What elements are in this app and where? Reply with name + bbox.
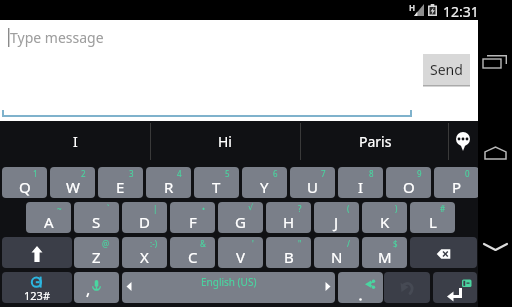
button[interactable]: N <box>314 237 359 268</box>
button[interactable]: E <box>98 167 143 198</box>
staticText: ~ <box>57 203 62 214</box>
staticText: Type message <box>10 28 104 47</box>
button[interactable]: Shift <box>2 237 72 268</box>
staticText: E <box>116 177 125 197</box>
staticText: S <box>92 212 101 232</box>
staticText: I <box>73 132 78 151</box>
button[interactable]: Q <box>2 167 47 198</box>
staticText: H <box>283 212 295 232</box>
button[interactable]: Recent apps <box>478 44 512 78</box>
staticText: 123# <box>24 288 50 303</box>
staticText: @ <box>102 238 110 249</box>
button[interactable]: Z <box>74 237 119 268</box>
button[interactable]: Space <box>122 272 335 303</box>
button[interactable]: O <box>386 167 431 198</box>
staticText: # <box>440 203 446 214</box>
button[interactable]: B <box>266 237 311 268</box>
button[interactable]: Switch to symbols <box>2 272 72 303</box>
staticText: 1 <box>33 168 38 179</box>
button[interactable]: R <box>146 167 191 198</box>
staticText: N <box>331 247 343 267</box>
button[interactable]: Y <box>242 167 287 198</box>
staticText: " <box>298 238 302 249</box>
staticText: T <box>212 177 221 197</box>
staticText: 3 <box>129 168 134 179</box>
staticText: 0 <box>465 168 470 179</box>
button[interactable]: Voice input <box>74 272 119 303</box>
button[interactable]: Paris <box>300 121 450 162</box>
staticText: ( <box>347 203 350 214</box>
button[interactable]: L <box>410 202 455 233</box>
staticText: K <box>380 212 390 232</box>
staticText: / <box>347 238 350 249</box>
staticText: √ <box>248 203 254 212</box>
staticText: 12:31 <box>443 2 479 21</box>
staticText: H <box>409 2 416 13</box>
staticText: W <box>66 177 80 197</box>
button[interactable]: Undo <box>384 272 430 303</box>
staticText: O <box>403 177 415 197</box>
staticText: 9 <box>417 168 422 179</box>
staticText: V <box>236 247 246 267</box>
staticText: G <box>235 212 246 232</box>
staticText: 7 <box>321 168 326 179</box>
staticText: P <box>452 177 462 197</box>
button[interactable]: X <box>122 237 167 268</box>
staticText: Send <box>430 60 463 79</box>
button[interactable]: V <box>218 237 263 268</box>
button[interactable]: C <box>170 237 215 268</box>
button[interactable]: G <box>218 202 263 233</box>
button[interactable]: P <box>434 167 479 198</box>
staticText: I <box>358 177 364 197</box>
staticText: J <box>334 212 339 232</box>
staticText: M <box>378 247 392 267</box>
button[interactable]: M <box>362 237 407 268</box>
staticText: ' <box>252 238 254 249</box>
staticText: & <box>200 238 206 249</box>
staticText: U <box>307 177 318 197</box>
button[interactable]: Send <box>423 54 470 85</box>
staticText: B <box>284 247 294 267</box>
button[interactable]: A <box>26 202 71 233</box>
staticText: | <box>153 203 158 214</box>
staticText: 5 <box>225 168 230 179</box>
button[interactable]: H <box>266 202 311 233</box>
staticText: Z <box>92 247 101 267</box>
staticText: Y <box>260 177 269 197</box>
button[interactable]: Enter <box>433 272 477 303</box>
staticText: X <box>140 247 149 267</box>
staticText: Hi <box>218 132 232 151</box>
staticText: Q <box>19 177 31 197</box>
staticText: ` <box>107 203 110 214</box>
button[interactable]: T <box>194 167 239 198</box>
staticText: ? <box>298 203 302 214</box>
button[interactable]: S <box>74 202 119 233</box>
button[interactable]: U <box>290 167 335 198</box>
staticText: English (US) <box>201 275 257 289</box>
button[interactable]: Period <box>338 272 383 303</box>
button[interactable]: W <box>50 167 95 198</box>
staticText: 8 <box>369 168 374 179</box>
staticText: 4 <box>177 168 182 179</box>
button[interactable]: Delete <box>410 237 477 268</box>
button[interactable]: I <box>0 121 150 162</box>
button[interactable]: Hi <box>150 121 300 162</box>
button[interactable]: F <box>170 202 215 233</box>
staticText: Paris <box>359 132 392 151</box>
button[interactable]: D <box>122 202 167 233</box>
staticText: $ <box>393 238 398 249</box>
button[interactable]: J <box>314 202 359 233</box>
staticText: R <box>164 177 174 197</box>
staticText: 2 <box>81 168 86 179</box>
staticText: L <box>429 212 437 232</box>
staticText: C <box>188 247 198 267</box>
button[interactable]: I <box>338 167 383 198</box>
button[interactable]: Back <box>478 230 512 264</box>
staticText: D <box>139 212 150 232</box>
staticText: A <box>44 212 54 232</box>
button[interactable]: K <box>362 202 407 233</box>
staticText: • <box>202 203 206 214</box>
staticText: :-) <box>150 238 158 249</box>
button[interactable]: More suggestions <box>448 121 478 162</box>
button[interactable]: Home <box>478 136 512 170</box>
